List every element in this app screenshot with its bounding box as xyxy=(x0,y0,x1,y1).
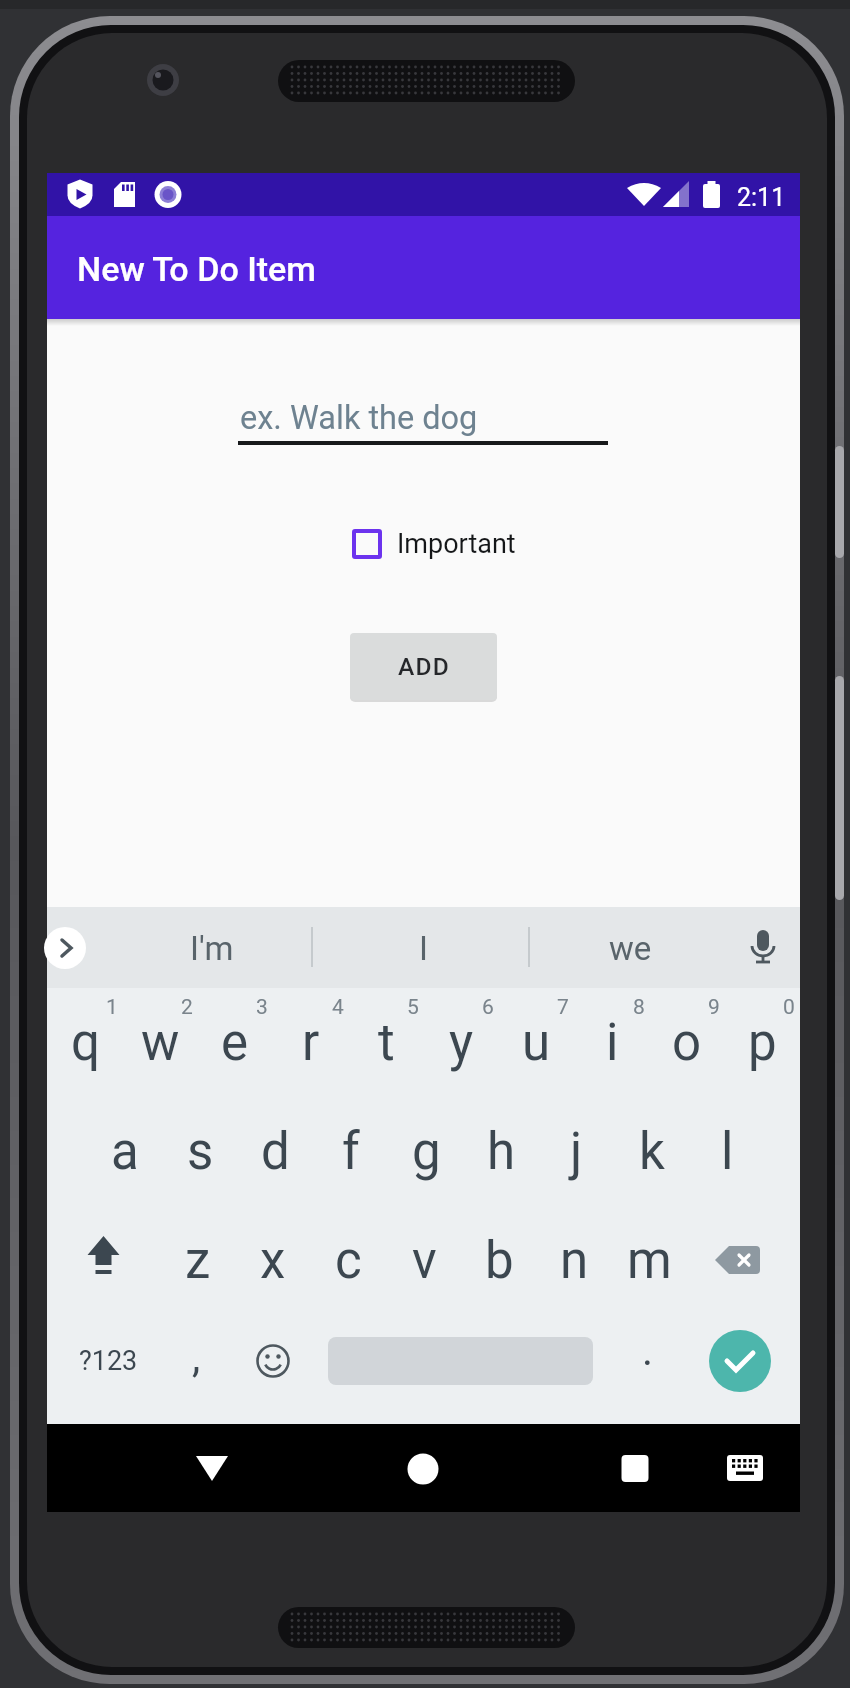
button[interactable] xyxy=(383,1428,463,1508)
button[interactable]: y xyxy=(424,988,498,1097)
staticText: p xyxy=(748,1013,777,1073)
button[interactable]: b xyxy=(462,1206,536,1315)
button[interactable] xyxy=(705,1428,785,1508)
staticText: 0 xyxy=(783,995,795,1020)
staticText: 2 xyxy=(181,995,193,1020)
staticText: g xyxy=(412,1122,441,1182)
staticText: 8 xyxy=(633,995,645,1020)
staticText: r xyxy=(302,1013,320,1073)
button[interactable]: a xyxy=(88,1097,162,1206)
button[interactable]: m xyxy=(612,1206,686,1315)
staticText: a xyxy=(111,1122,139,1182)
staticText: c xyxy=(335,1231,362,1291)
button[interactable]: i xyxy=(575,988,649,1097)
staticText: ?123 xyxy=(79,1345,138,1377)
staticText: ex. Walk the dog xyxy=(240,399,478,437)
button[interactable]: n xyxy=(537,1206,611,1315)
staticText: New To Do Item xyxy=(77,249,316,289)
staticText: 1 xyxy=(106,995,118,1020)
button[interactable]: I xyxy=(363,927,483,969)
staticText: y xyxy=(449,1013,474,1073)
staticText: u xyxy=(522,1013,551,1073)
staticText: n xyxy=(560,1231,589,1291)
staticText: h xyxy=(487,1122,516,1182)
button[interactable] xyxy=(44,927,86,969)
staticText: 4 xyxy=(332,995,344,1020)
button[interactable]: p xyxy=(725,988,799,1097)
button[interactable]: we xyxy=(570,927,690,969)
button[interactable]: r xyxy=(274,988,348,1097)
staticText: I'm xyxy=(190,929,234,968)
staticText: x xyxy=(260,1231,286,1291)
staticText: e xyxy=(221,1013,249,1073)
button[interactable]: j xyxy=(539,1097,613,1206)
button[interactable]: k xyxy=(615,1097,689,1206)
button[interactable]: t xyxy=(349,988,423,1097)
button[interactable]: w xyxy=(123,988,197,1097)
staticText: 2:11 xyxy=(737,183,786,212)
staticText: l xyxy=(721,1122,734,1182)
staticText: ADD xyxy=(398,652,450,681)
button[interactable]: q xyxy=(48,988,122,1097)
staticText: j xyxy=(570,1122,583,1182)
button[interactable]: v xyxy=(387,1206,461,1315)
staticText: b xyxy=(485,1231,514,1291)
staticText: 6 xyxy=(482,995,494,1020)
staticText: i xyxy=(606,1013,619,1073)
button[interactable]: x xyxy=(236,1206,310,1315)
staticText: Important xyxy=(397,528,516,560)
button[interactable] xyxy=(595,1428,675,1508)
button[interactable]: h xyxy=(464,1097,538,1206)
staticText: w xyxy=(141,1013,180,1073)
button[interactable]: ADD xyxy=(350,633,497,700)
button[interactable]: ?123 xyxy=(63,1315,153,1407)
staticText: d xyxy=(261,1122,290,1182)
staticText: m xyxy=(627,1231,672,1291)
staticText: s xyxy=(187,1122,214,1182)
staticText: 3 xyxy=(256,995,268,1020)
button[interactable]: ex. Walk the dog xyxy=(238,319,608,454)
button[interactable]: Important xyxy=(352,528,516,560)
staticText: t xyxy=(378,1013,395,1073)
button[interactable]: o xyxy=(650,988,724,1097)
button[interactable]: c xyxy=(311,1206,385,1315)
button[interactable]: e xyxy=(198,988,272,1097)
staticText: 7 xyxy=(557,995,569,1020)
staticText: z xyxy=(185,1231,211,1291)
staticText: q xyxy=(71,1013,100,1073)
button[interactable]: g xyxy=(389,1097,463,1206)
button[interactable]: f xyxy=(314,1097,388,1206)
button[interactable] xyxy=(172,1428,252,1508)
staticText: 5 xyxy=(407,995,419,1020)
button[interactable]: d xyxy=(238,1097,312,1206)
staticText: I xyxy=(419,929,428,968)
button[interactable]: I'm xyxy=(152,927,272,969)
staticText: . xyxy=(642,1326,654,1375)
staticText: o xyxy=(672,1013,702,1073)
staticText: f xyxy=(342,1122,360,1182)
button[interactable]: l xyxy=(690,1097,764,1206)
staticText: 9 xyxy=(708,995,720,1020)
staticText: we xyxy=(609,929,652,968)
button[interactable]: u xyxy=(499,988,573,1097)
button[interactable]: s xyxy=(163,1097,237,1206)
staticText: k xyxy=(639,1122,665,1182)
button[interactable]: z xyxy=(161,1206,235,1315)
staticText: , xyxy=(192,1333,201,1382)
staticText: v xyxy=(412,1231,437,1291)
